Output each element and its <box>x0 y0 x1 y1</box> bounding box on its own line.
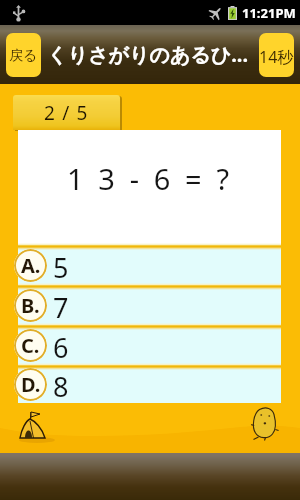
button[interactable]: 5 <box>0 244 300 284</box>
button[interactable]: 戻る <box>6 33 41 77</box>
staticText: 2 / 5 <box>44 100 89 126</box>
staticText: D. <box>21 371 41 398</box>
staticText: くりさがりのあるひ... <box>47 41 257 68</box>
staticText: A. <box>21 252 41 279</box>
button[interactable]: 8 <box>0 364 300 403</box>
button[interactable]: Remaining time 14 seconds <box>259 33 294 77</box>
staticText: 戻る <box>9 47 38 65</box>
staticText: 14秒 <box>259 46 294 68</box>
staticText: B. <box>21 292 40 319</box>
staticText: 11:21PM <box>242 4 296 22</box>
staticText: 1 3 - 6 = ? <box>67 159 233 198</box>
staticText: 6 <box>53 329 69 366</box>
staticText: 5 <box>53 249 69 286</box>
staticText: 8 <box>53 368 69 405</box>
button[interactable]: 7 <box>0 284 300 324</box>
staticText: 7 <box>53 289 69 326</box>
button[interactable]: 6 <box>0 324 300 364</box>
button[interactable]: 2 / 5 <box>13 95 120 130</box>
staticText: C. <box>21 332 40 359</box>
